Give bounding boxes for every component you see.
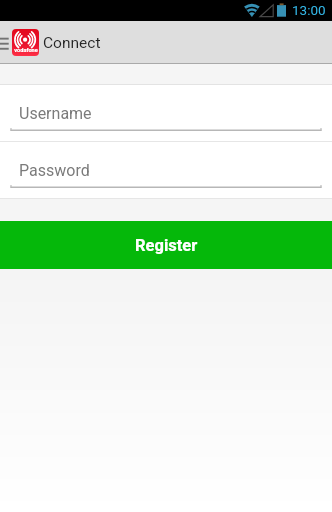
- staticText: Password: [19, 161, 90, 180]
- button[interactable]: Open navigation drawer: [0, 21, 45, 64]
- button[interactable]: Username: [0, 85, 332, 141]
- button[interactable]: Register: [0, 221, 332, 269]
- staticText: Connect: [43, 34, 101, 52]
- button[interactable]: Password: [0, 142, 332, 198]
- staticText: Username: [19, 104, 92, 123]
- staticText: 13:00: [292, 2, 326, 18]
- staticText: vodafone: [14, 47, 38, 54]
- staticText: Register: [135, 236, 198, 255]
